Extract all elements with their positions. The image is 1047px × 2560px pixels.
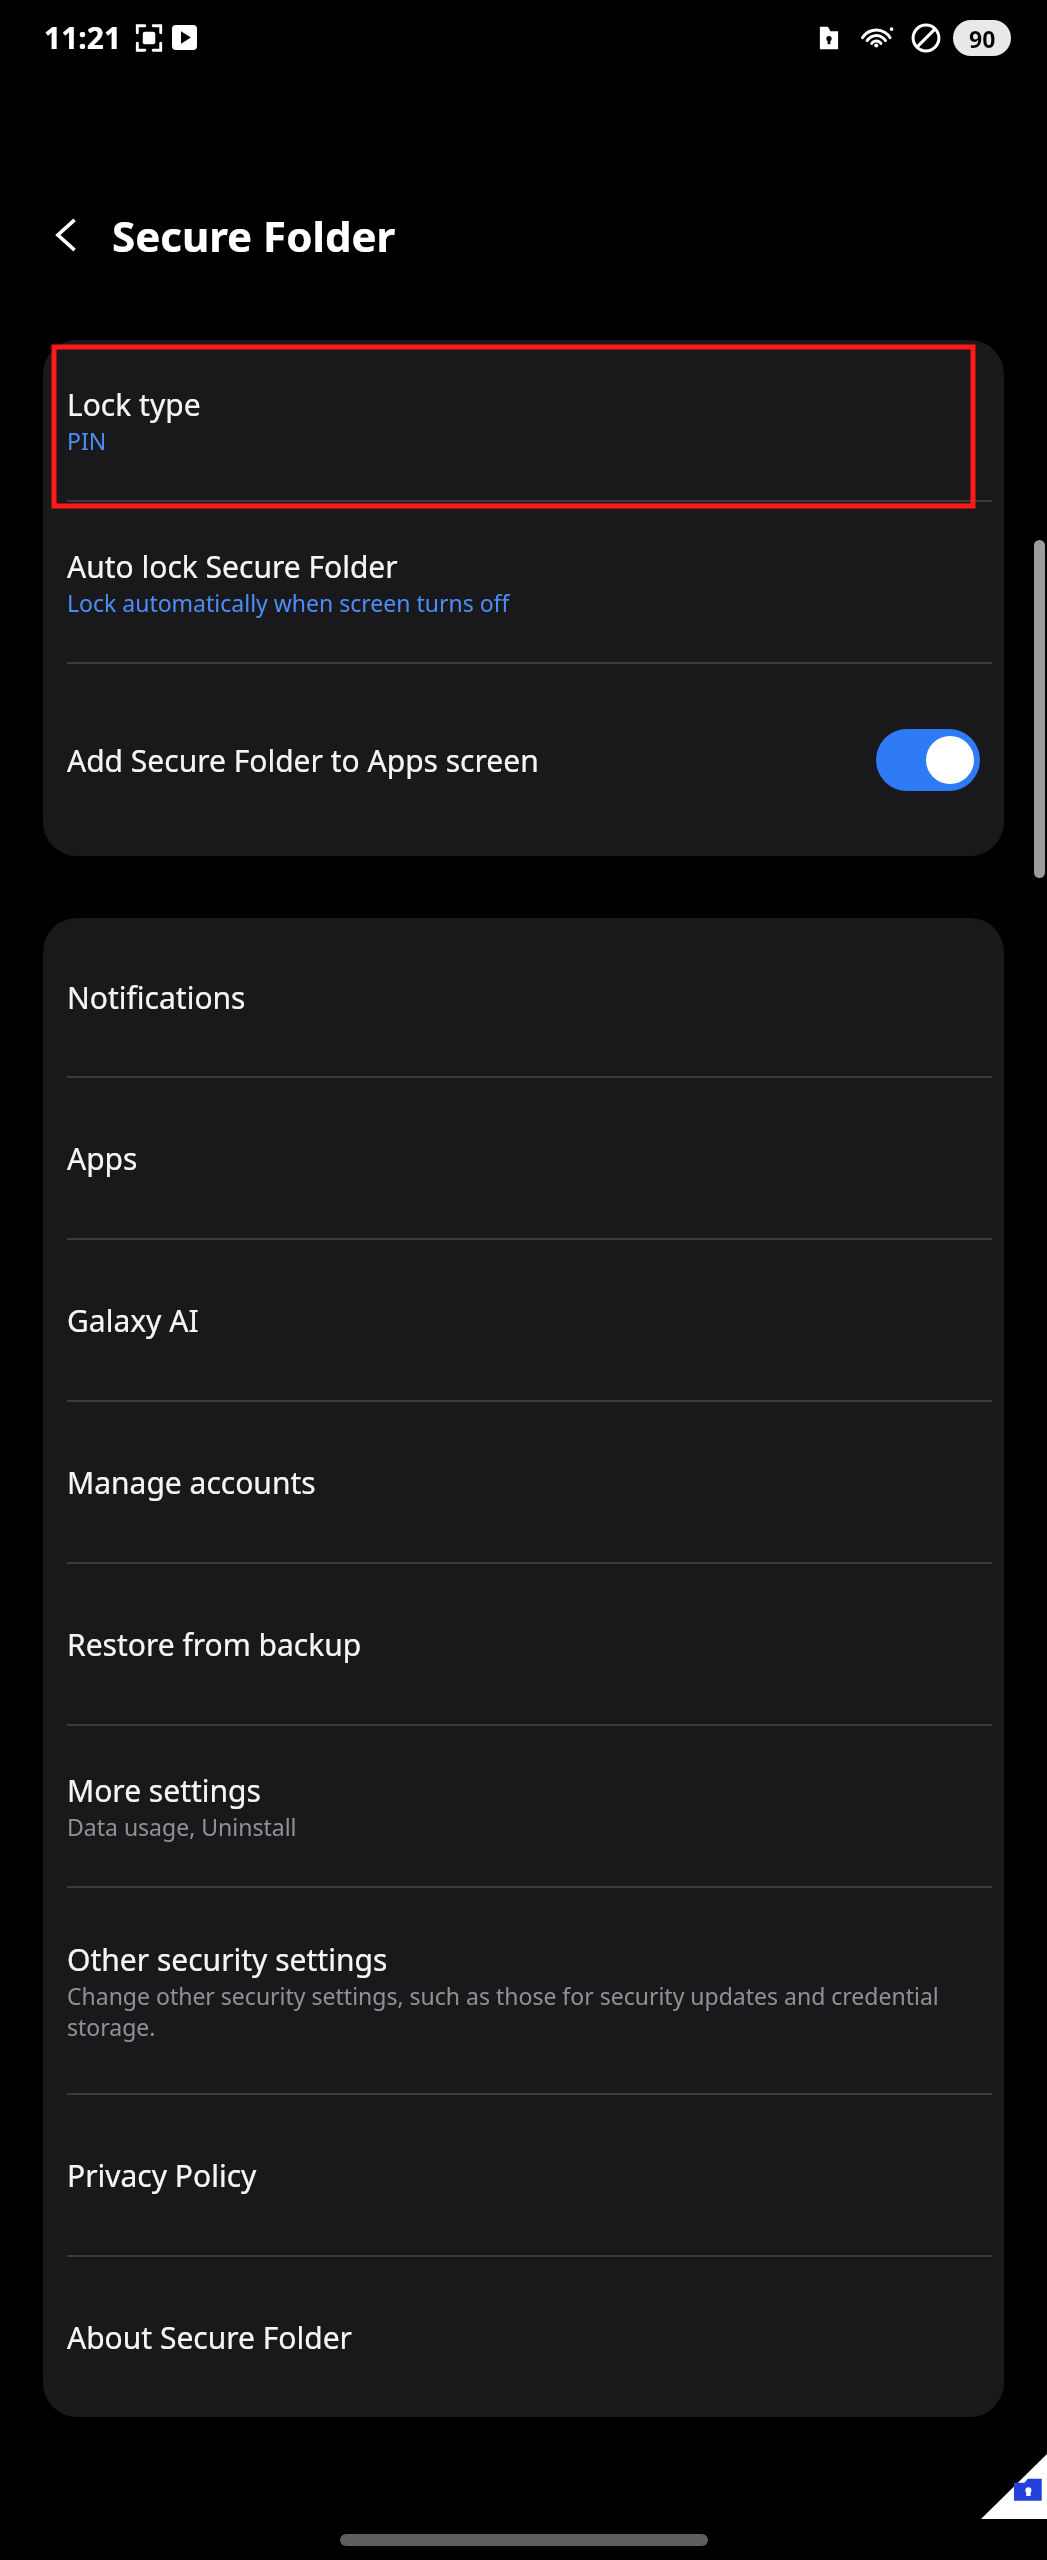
- button[interactable]: Auto lock Secure Folder: [43, 502, 1004, 662]
- staticText: Notifications: [67, 977, 246, 1018]
- staticText: Lock automatically when screen turns off: [67, 587, 510, 618]
- button[interactable]: More settings: [43, 1726, 1004, 1886]
- staticText: 11:21: [44, 17, 122, 58]
- staticText: Lock type: [67, 384, 201, 425]
- button[interactable]: Privacy Policy: [43, 2095, 1004, 2255]
- button[interactable]: Other security settings: [43, 1888, 1004, 2093]
- button[interactable]: Back: [30, 198, 104, 272]
- button[interactable]: Galaxy AI: [43, 1240, 1004, 1400]
- staticText: 90: [969, 23, 996, 54]
- button[interactable]: Manage accounts: [43, 1402, 1004, 1562]
- staticText: Auto lock Secure Folder: [67, 546, 398, 587]
- staticText: More settings: [67, 1770, 261, 1811]
- button[interactable]: Notifications: [43, 918, 1004, 1076]
- button[interactable]: Add Secure Folder to Apps screen: [43, 664, 1004, 856]
- staticText: Add Secure Folder to Apps screen: [67, 740, 539, 781]
- staticText: About Secure Folder: [67, 2317, 352, 2358]
- button[interactable]: About Secure Folder: [43, 2257, 1004, 2417]
- button[interactable]: Add Secure Folder to Apps screen: [876, 729, 980, 791]
- staticText: Galaxy AI: [67, 1300, 199, 1341]
- staticText: Apps: [67, 1138, 138, 1179]
- staticText: Manage accounts: [67, 1462, 316, 1503]
- staticText: Privacy Policy: [67, 2155, 257, 2196]
- staticText: Secure Folder: [112, 207, 396, 264]
- staticText: Other security settings: [67, 1939, 388, 1980]
- staticText: Restore from backup: [67, 1624, 362, 1665]
- staticText: Change other security settings, such as …: [67, 1980, 980, 2043]
- button[interactable]: Lock type: [43, 340, 1004, 500]
- button[interactable]: Restore from backup: [43, 1564, 1004, 1724]
- staticText: PIN: [67, 425, 107, 456]
- staticText: Data usage, Uninstall: [67, 1811, 297, 1842]
- button[interactable]: Apps: [43, 1078, 1004, 1238]
